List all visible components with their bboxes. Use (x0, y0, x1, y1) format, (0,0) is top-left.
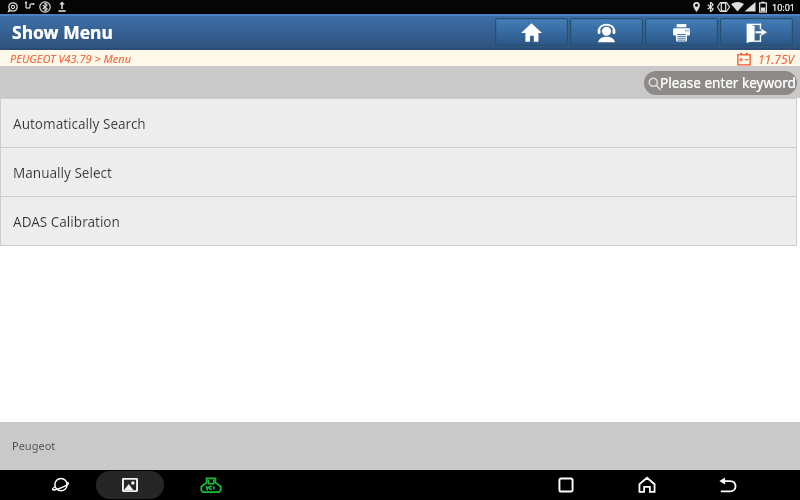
button[interactable]: VCI connection (195, 470, 227, 500)
button[interactable]: Home (631, 470, 663, 500)
staticText: PEUGEOT V43.79 > Menu (10, 51, 132, 66)
button[interactable]: Automatically Search (0, 99, 797, 148)
button[interactable]: Please enter keyword (644, 71, 797, 95)
button[interactable]: Back (712, 470, 744, 500)
button[interactable]: Customer support (570, 18, 643, 46)
button[interactable]: Browser (44, 470, 76, 500)
button[interactable]: Recents (550, 470, 582, 500)
staticText: Automatically Search (13, 115, 146, 133)
staticText: Show Menu (12, 20, 113, 44)
staticText: Peugeot (12, 438, 56, 453)
button[interactable]: Exit (720, 18, 793, 46)
staticText: ADAS Calibration (13, 213, 120, 231)
staticText: Please enter keyword (660, 74, 796, 92)
button[interactable]: Manually Select (0, 148, 797, 197)
staticText: 11.75V (758, 51, 795, 67)
staticText: Manually Select (13, 164, 112, 182)
button[interactable]: ADAS Calibration (0, 197, 797, 246)
button[interactable]: Print (645, 18, 718, 46)
button[interactable]: Home (495, 18, 568, 46)
button[interactable]: Gallery (96, 471, 164, 499)
staticText: 10:01 (772, 1, 796, 13)
